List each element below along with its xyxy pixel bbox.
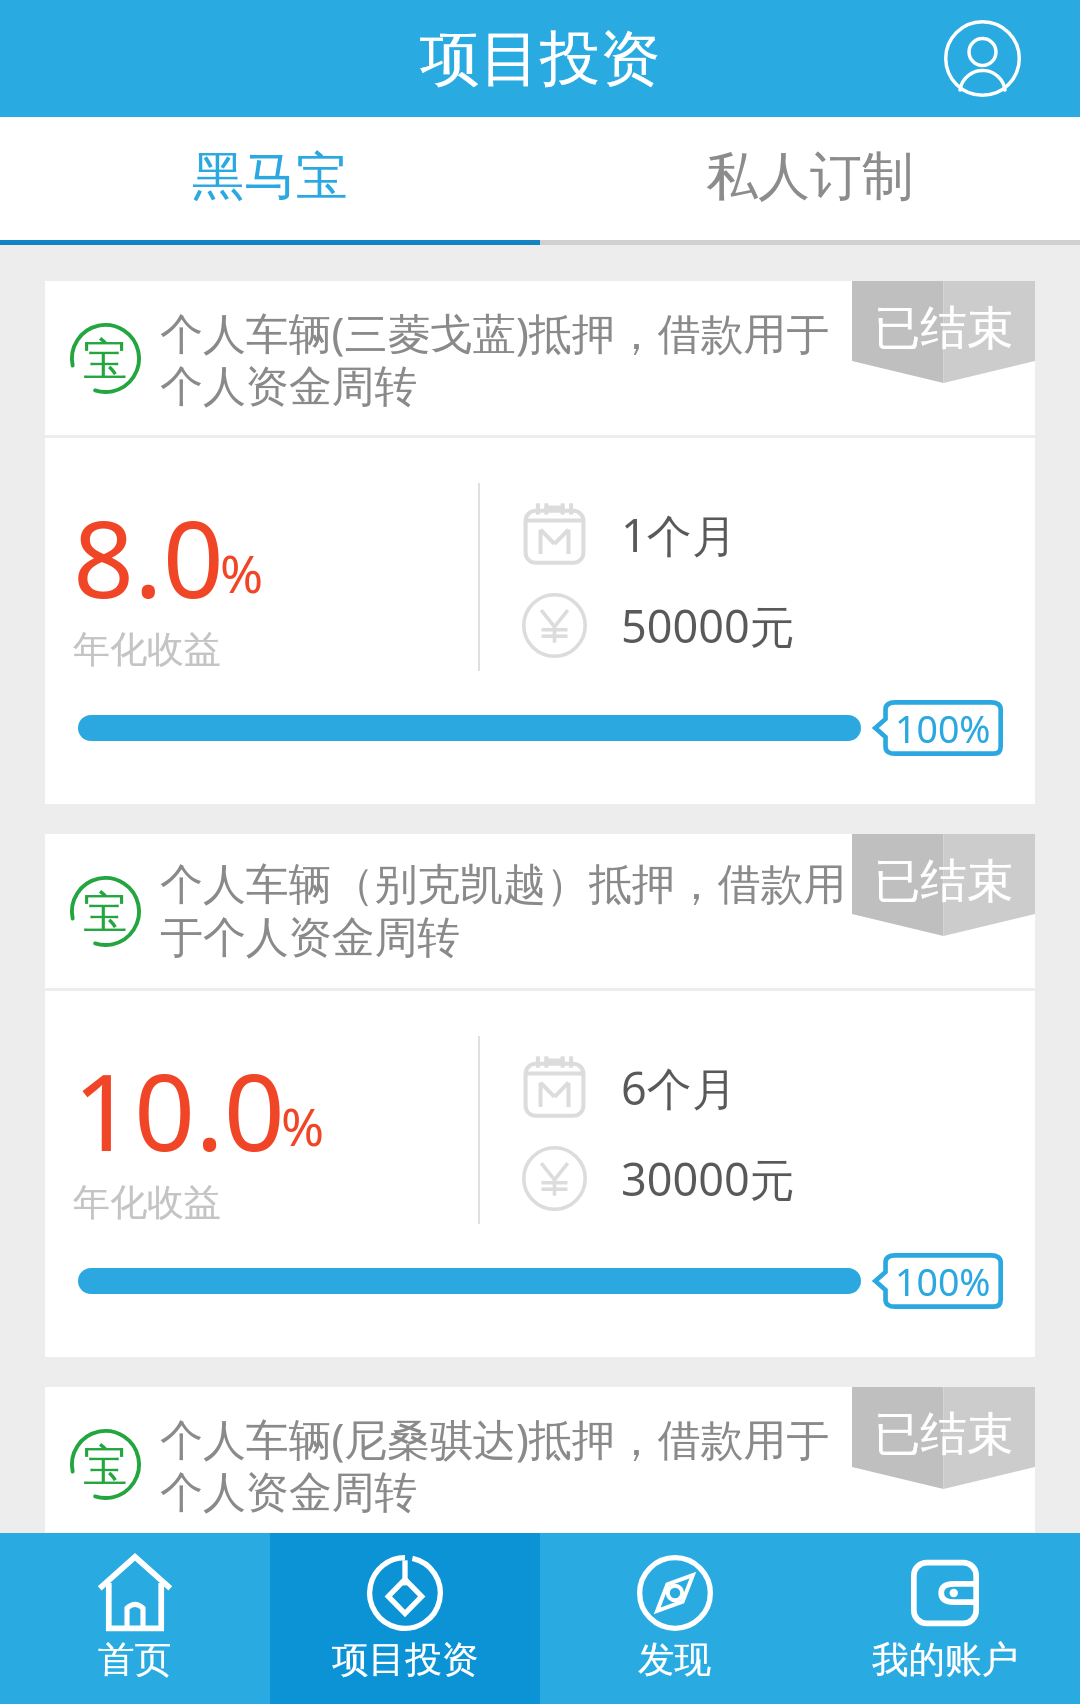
staticText: 8.0 bbox=[73, 484, 224, 629]
button[interactable]: 发现 bbox=[540, 1533, 810, 1704]
button[interactable]: 宝 bbox=[45, 1387, 1035, 1533]
staticText: 已结束 bbox=[874, 852, 1014, 911]
staticText: 年化收益 bbox=[73, 626, 221, 672]
staticText: 6个月 bbox=[621, 1057, 737, 1118]
button[interactable]: 黑马宝 bbox=[0, 117, 540, 209]
staticText: 已结束 bbox=[874, 1405, 1014, 1464]
button[interactable]: Account bbox=[924, 0, 1041, 117]
staticText: % bbox=[220, 538, 264, 609]
staticText: 10.0 bbox=[73, 1037, 285, 1182]
button[interactable]: 我的账户 bbox=[810, 1533, 1080, 1704]
staticText: 我的账户 bbox=[872, 1637, 1019, 1683]
staticText: 项目投资 bbox=[332, 1637, 479, 1683]
staticText: % bbox=[281, 1091, 325, 1162]
staticText: 发现 bbox=[638, 1637, 712, 1683]
staticText: 年化收益 bbox=[73, 1179, 221, 1225]
staticText: 1个月 bbox=[621, 504, 737, 565]
staticText: 30000元 bbox=[621, 1148, 795, 1209]
button[interactable]: 私人订制 bbox=[540, 117, 1080, 209]
staticText: 宝 bbox=[83, 332, 128, 388]
staticText: 100% bbox=[895, 703, 991, 754]
staticText: 50000元 bbox=[621, 595, 795, 656]
staticText: 宝 bbox=[83, 1438, 128, 1494]
staticText: 100% bbox=[895, 1256, 991, 1307]
staticText: 个人车辆(尼桑骐达)抵押，借款用于个人资金周转 bbox=[160, 1409, 864, 1520]
button[interactable]: 项目投资 bbox=[270, 1533, 540, 1704]
staticText: 宝 bbox=[83, 885, 128, 941]
staticText: 个人车辆(三菱戈蓝)抵押，借款用于个人资金周转 bbox=[160, 303, 864, 414]
staticText: 首页 bbox=[98, 1637, 172, 1683]
staticText: 个人车辆（别克凯越）抵押，借款用于个人资金周转 bbox=[160, 858, 864, 965]
button[interactable]: 宝 bbox=[45, 834, 1035, 1357]
button[interactable]: 宝 bbox=[45, 281, 1035, 804]
button[interactable]: 首页 bbox=[0, 1533, 270, 1704]
staticText: 黑马宝 bbox=[192, 144, 348, 209]
staticText: 项目投资 bbox=[420, 21, 660, 97]
staticText: 已结束 bbox=[874, 299, 1014, 358]
staticText: 私人订制 bbox=[706, 144, 914, 209]
